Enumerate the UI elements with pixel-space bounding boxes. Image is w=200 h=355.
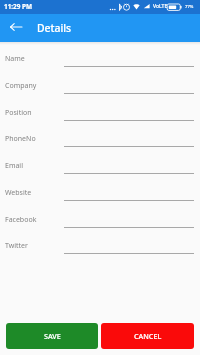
button[interactable]: SAVE xyxy=(6,323,98,349)
button[interactable]: Facebook xyxy=(0,207,200,233)
button[interactable]: Website xyxy=(0,180,200,206)
button[interactable]: Navigate up xyxy=(0,14,30,42)
staticText: Twitter xyxy=(5,241,28,251)
staticText: Company xyxy=(5,81,37,91)
button[interactable]: Name xyxy=(0,46,200,72)
button[interactable]: Company xyxy=(0,73,200,99)
button[interactable]: PhoneNo xyxy=(0,126,200,152)
staticText: PhoneNo xyxy=(5,134,36,144)
staticText: Website xyxy=(5,188,32,198)
staticText: SAVE xyxy=(44,331,61,341)
staticText: Details xyxy=(37,21,72,35)
staticText: Name xyxy=(5,54,25,64)
button[interactable]: CANCEL xyxy=(101,323,194,349)
staticText: Facebook xyxy=(5,215,37,225)
staticText: Position xyxy=(5,108,32,118)
staticText: Email xyxy=(5,161,23,171)
button[interactable]: Position xyxy=(0,100,200,126)
staticText: 11:29 PM xyxy=(4,2,33,11)
staticText: VoLTE xyxy=(153,3,168,10)
button[interactable]: Twitter xyxy=(0,233,200,259)
button[interactable]: Email xyxy=(0,153,200,179)
staticText: 77% xyxy=(185,4,194,10)
staticText: CANCEL xyxy=(134,331,162,341)
